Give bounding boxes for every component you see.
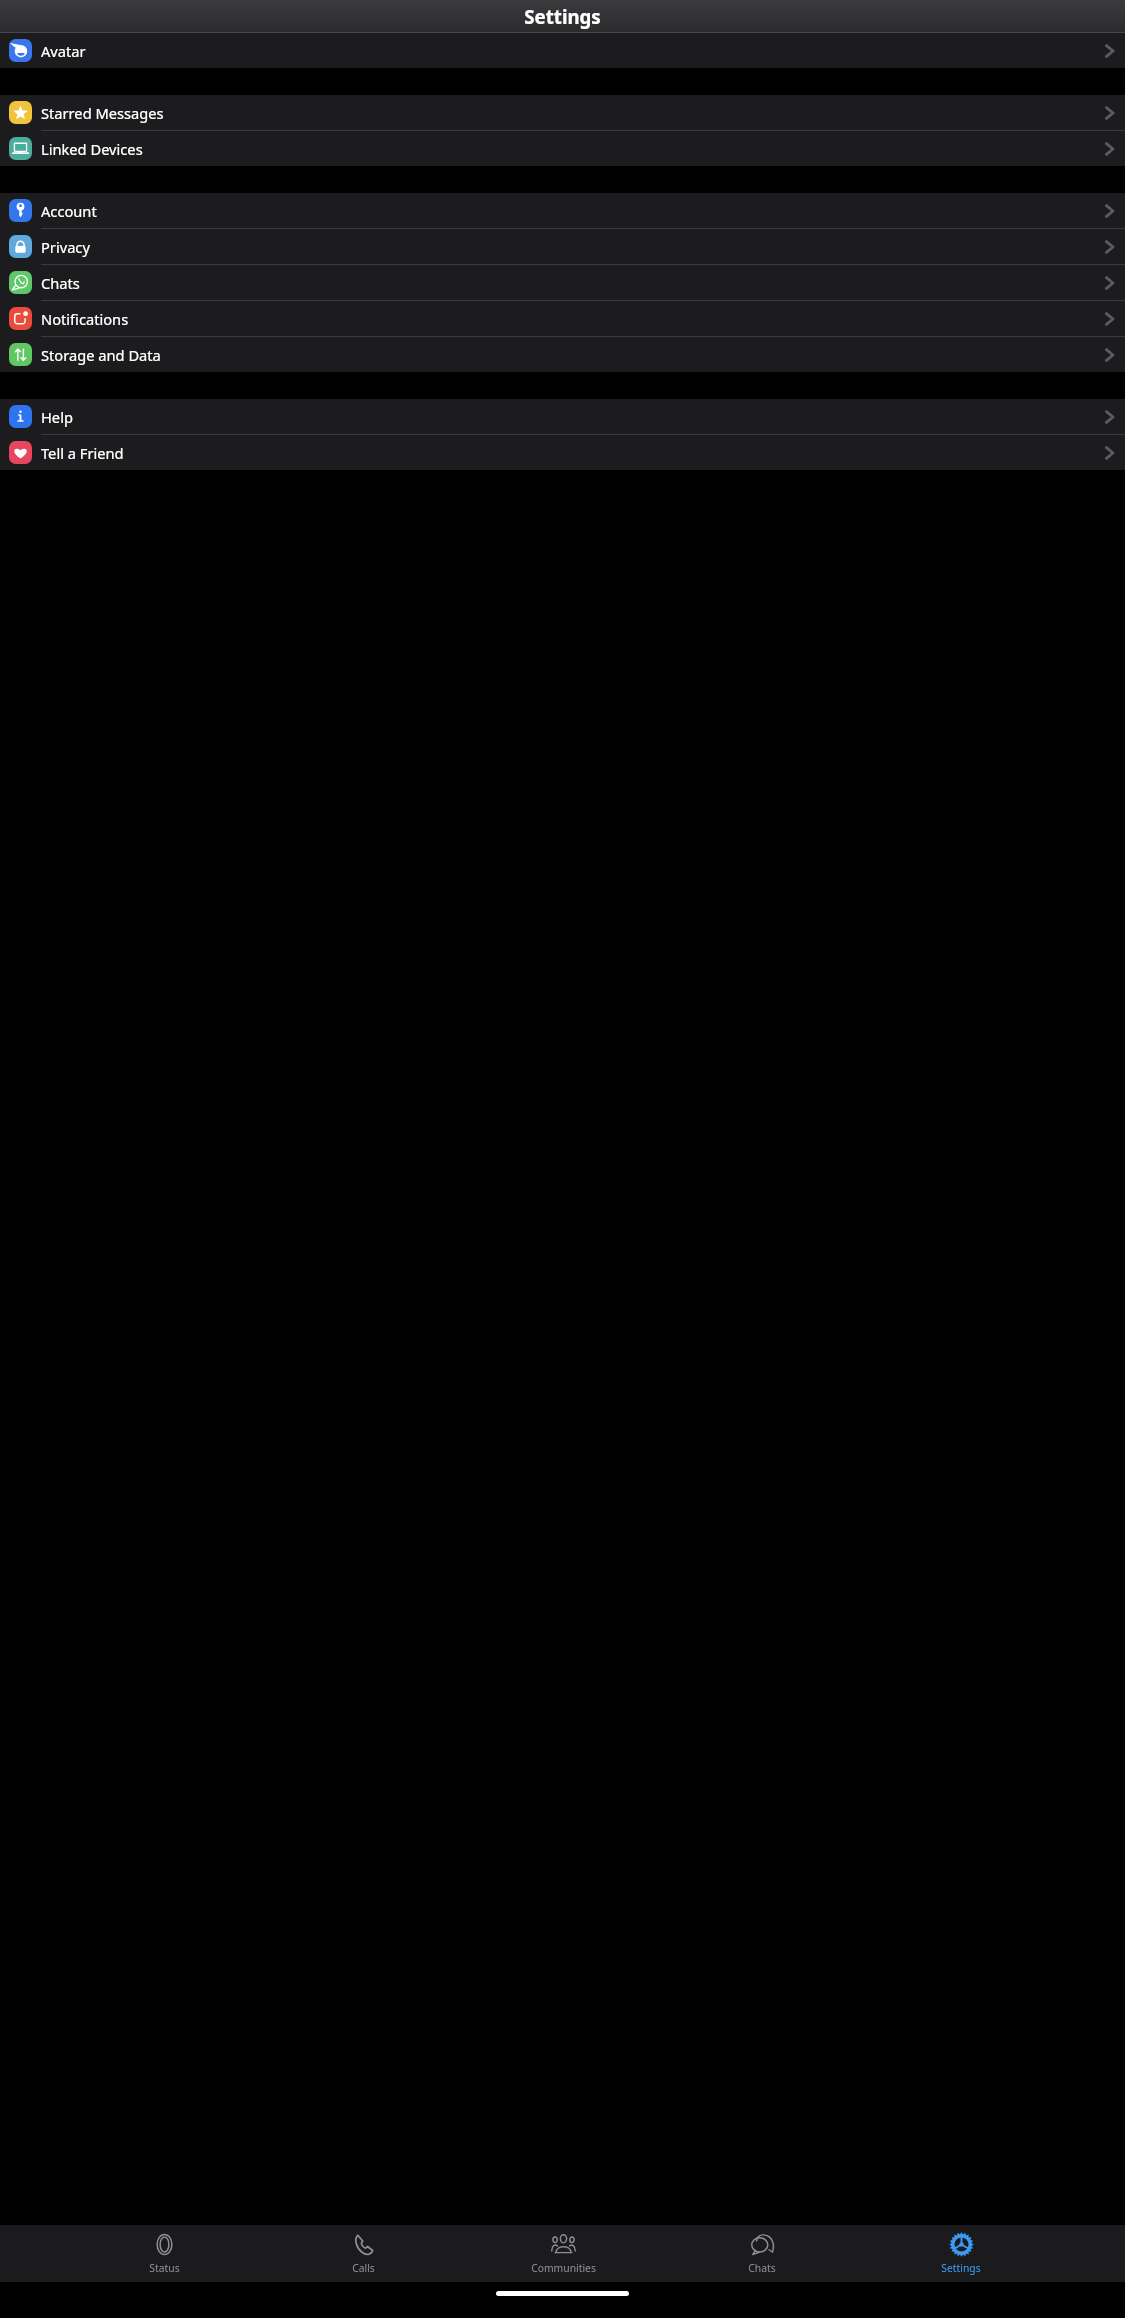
staticText: Linked Devices	[41, 139, 1104, 159]
staticText: Settings	[941, 2261, 981, 2275]
staticText: Calls	[352, 2261, 375, 2275]
button[interactable]: Starred Messages	[0, 95, 1125, 130]
button[interactable]: Calls	[328, 2225, 398, 2275]
staticText: Account	[41, 201, 1104, 221]
staticText: Status	[149, 2261, 180, 2275]
button[interactable]: Avatar	[0, 33, 1125, 68]
staticText: Notifications	[41, 309, 1104, 329]
button[interactable]: Settings	[926, 2225, 996, 2275]
staticText: Starred Messages	[41, 103, 1104, 123]
staticText: Storage and Data	[41, 345, 1104, 365]
staticText: Chats	[41, 273, 1104, 293]
staticText: Tell a Friend	[41, 443, 1104, 463]
button[interactable]: Status	[129, 2225, 199, 2275]
staticText: Avatar	[41, 41, 1104, 61]
button[interactable]: Storage and Data	[0, 337, 1125, 372]
staticText: Settings	[524, 4, 601, 29]
button[interactable]: Chats	[727, 2225, 797, 2275]
staticText: Communities	[531, 2261, 596, 2275]
button[interactable]: Tell a Friend	[0, 435, 1125, 470]
button[interactable]: Chats	[0, 265, 1125, 300]
button[interactable]: Account	[0, 193, 1125, 228]
button[interactable]: Notifications	[0, 301, 1125, 336]
button[interactable]: Privacy	[0, 229, 1125, 264]
staticText: Privacy	[41, 237, 1104, 257]
button[interactable]: Help	[0, 399, 1125, 434]
button[interactable]: Communities	[528, 2225, 598, 2275]
staticText: Chats	[748, 2261, 776, 2275]
button[interactable]: Linked Devices	[0, 131, 1125, 166]
staticText: Help	[41, 407, 1104, 427]
